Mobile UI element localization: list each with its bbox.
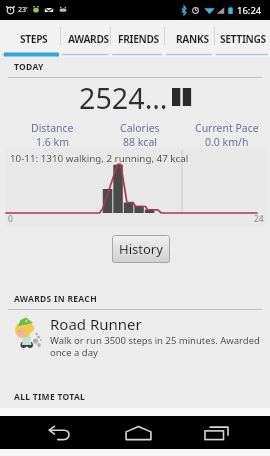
staticText: Road Runner — [50, 314, 142, 334]
staticText: 0.0 km/h — [205, 135, 249, 149]
button[interactable]: STEPS — [0, 20, 60, 53]
staticText: 88 kcal — [123, 135, 157, 149]
staticText: TODAY — [14, 61, 44, 73]
button[interactable]: AWARDS — [60, 20, 111, 53]
staticText: 0 — [8, 213, 13, 225]
staticText: Walk or run 3500 steps in 25 minutes. Aw… — [50, 334, 260, 359]
button[interactable]: Road Runner — [0, 312, 270, 364]
button[interactable]: FRIENDS — [110, 20, 164, 53]
staticText: AWARDS — [68, 32, 109, 46]
staticText: 23' — [18, 5, 28, 15]
button[interactable]: 2524… — [79, 78, 168, 117]
button[interactable]: History — [112, 235, 170, 263]
staticText: RANKS — [176, 32, 209, 46]
staticText: Calories — [120, 121, 160, 135]
staticText: FRIENDS — [118, 32, 159, 46]
button[interactable]: RANKS — [164, 20, 214, 53]
staticText: 16:24 — [237, 4, 262, 17]
button[interactable]: Back — [39, 416, 79, 449]
button[interactable]: Calories — [96, 121, 183, 149]
staticText: 10-11: 1310 walking, 2 running, 47 kcal — [10, 152, 189, 165]
staticText: STEPS — [20, 32, 48, 46]
button[interactable]: Current Pace — [183, 121, 270, 149]
staticText: 1.6 km — [36, 135, 69, 149]
staticText: 24 — [254, 213, 264, 225]
staticText: AWARDS IN REACH — [14, 293, 97, 305]
button[interactable]: SETTINGS — [214, 20, 270, 53]
button[interactable]: Home — [118, 416, 158, 449]
staticText: Distance — [31, 121, 74, 135]
staticText: History — [119, 240, 163, 258]
button[interactable]: Recent apps — [196, 416, 236, 449]
button[interactable]: Distance — [8, 121, 96, 149]
staticText: SETTINGS — [220, 32, 266, 46]
staticText: ALL TIME TOTAL — [14, 391, 86, 403]
staticText: Current Pace — [195, 121, 259, 135]
staticText: 2524… — [79, 78, 168, 117]
